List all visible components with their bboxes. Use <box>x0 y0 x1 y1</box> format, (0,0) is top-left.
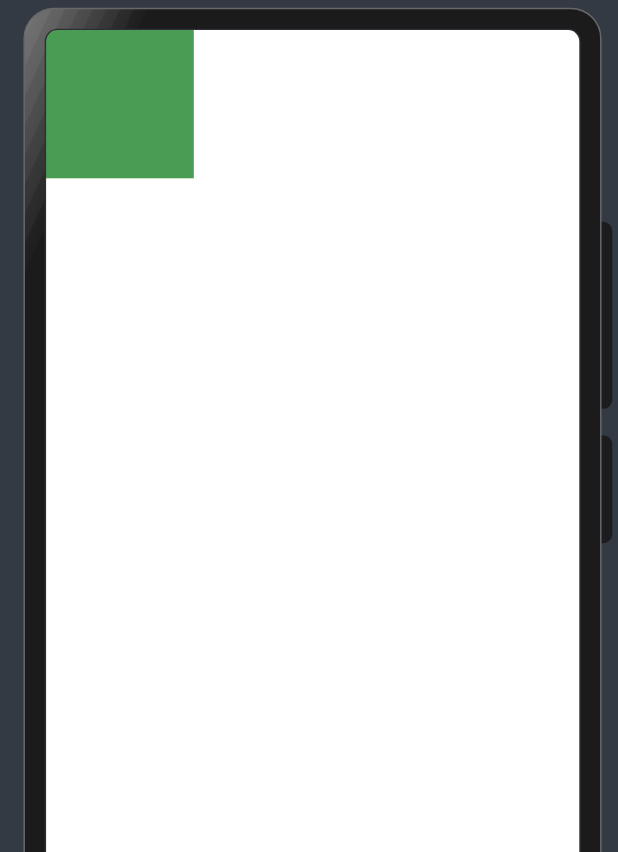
button[interactable]: Green header block <box>45 29 193 178</box>
button[interactable]: Power button <box>579 435 612 543</box>
button[interactable]: Volume buttons <box>579 222 612 409</box>
